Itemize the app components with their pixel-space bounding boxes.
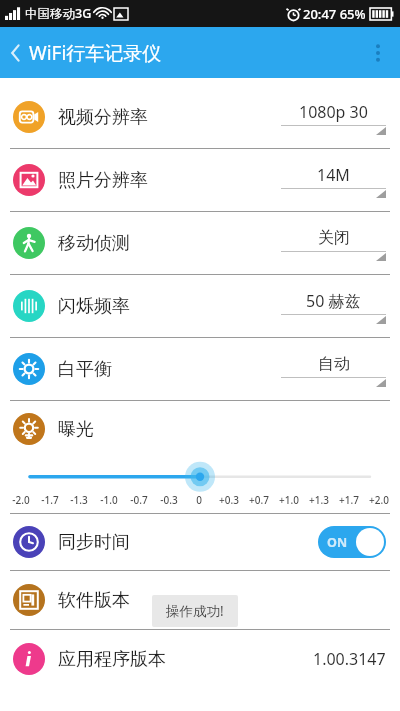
staticText: 同步时间	[58, 531, 130, 554]
staticText: 中国移动3G	[25, 5, 92, 22]
staticText: 14M	[317, 164, 350, 186]
staticText: 操作成功!	[166, 602, 224, 620]
button[interactable]: 移动侦测	[0, 212, 400, 274]
staticText: ON	[327, 534, 348, 551]
staticText: 1.00.3147	[313, 648, 386, 670]
staticText: 应用程序版本	[58, 648, 166, 671]
staticText: 白平衡	[58, 358, 112, 381]
staticText: -1.3	[70, 493, 88, 507]
button[interactable]: 照片分辨率	[0, 149, 400, 211]
button[interactable]: More options	[356, 27, 400, 78]
staticText: 自动	[318, 354, 350, 374]
staticText: +0.3	[219, 493, 239, 507]
staticText: 20:47 65%	[303, 5, 366, 23]
staticText: 0	[196, 493, 202, 507]
staticText: +1.0	[279, 493, 299, 507]
button[interactable]: 闪烁频率	[0, 275, 400, 337]
button[interactable]: 同步时间 开关	[318, 526, 386, 558]
staticText: 50 赫兹	[306, 290, 361, 312]
staticText: -0.3	[160, 493, 178, 507]
staticText: 软件版本	[58, 589, 130, 612]
staticText: +0.7	[249, 493, 269, 507]
staticText: 移动侦测	[58, 232, 130, 255]
staticText: -0.7	[130, 493, 148, 507]
staticText: -1.7	[41, 493, 59, 507]
button[interactable]: 白平衡	[0, 338, 400, 400]
staticText: +2.0	[369, 493, 389, 507]
button[interactable]: 同步时间	[0, 514, 400, 570]
staticText: WiFi行车记录仪	[29, 40, 162, 66]
button[interactable]: 软件版本	[0, 571, 400, 629]
button[interactable]: 曝光	[0, 401, 400, 457]
staticText: 1080p 30	[299, 101, 368, 123]
button[interactable]: Back	[0, 27, 168, 78]
staticText: -1.0	[100, 493, 118, 507]
staticText: +1.3	[309, 493, 329, 507]
staticText: 照片分辨率	[58, 169, 148, 192]
staticText: 曝光	[58, 418, 94, 441]
other: Back	[10, 43, 21, 63]
staticText: -2.0	[12, 493, 30, 507]
staticText: 闪烁频率	[58, 295, 130, 318]
staticText: 视频分辨率	[58, 106, 148, 129]
staticText: 关闭	[318, 228, 350, 248]
button[interactable]: 应用程序版本	[0, 630, 400, 688]
button[interactable]: 视频分辨率	[0, 86, 400, 148]
staticText: +1.7	[339, 493, 359, 507]
